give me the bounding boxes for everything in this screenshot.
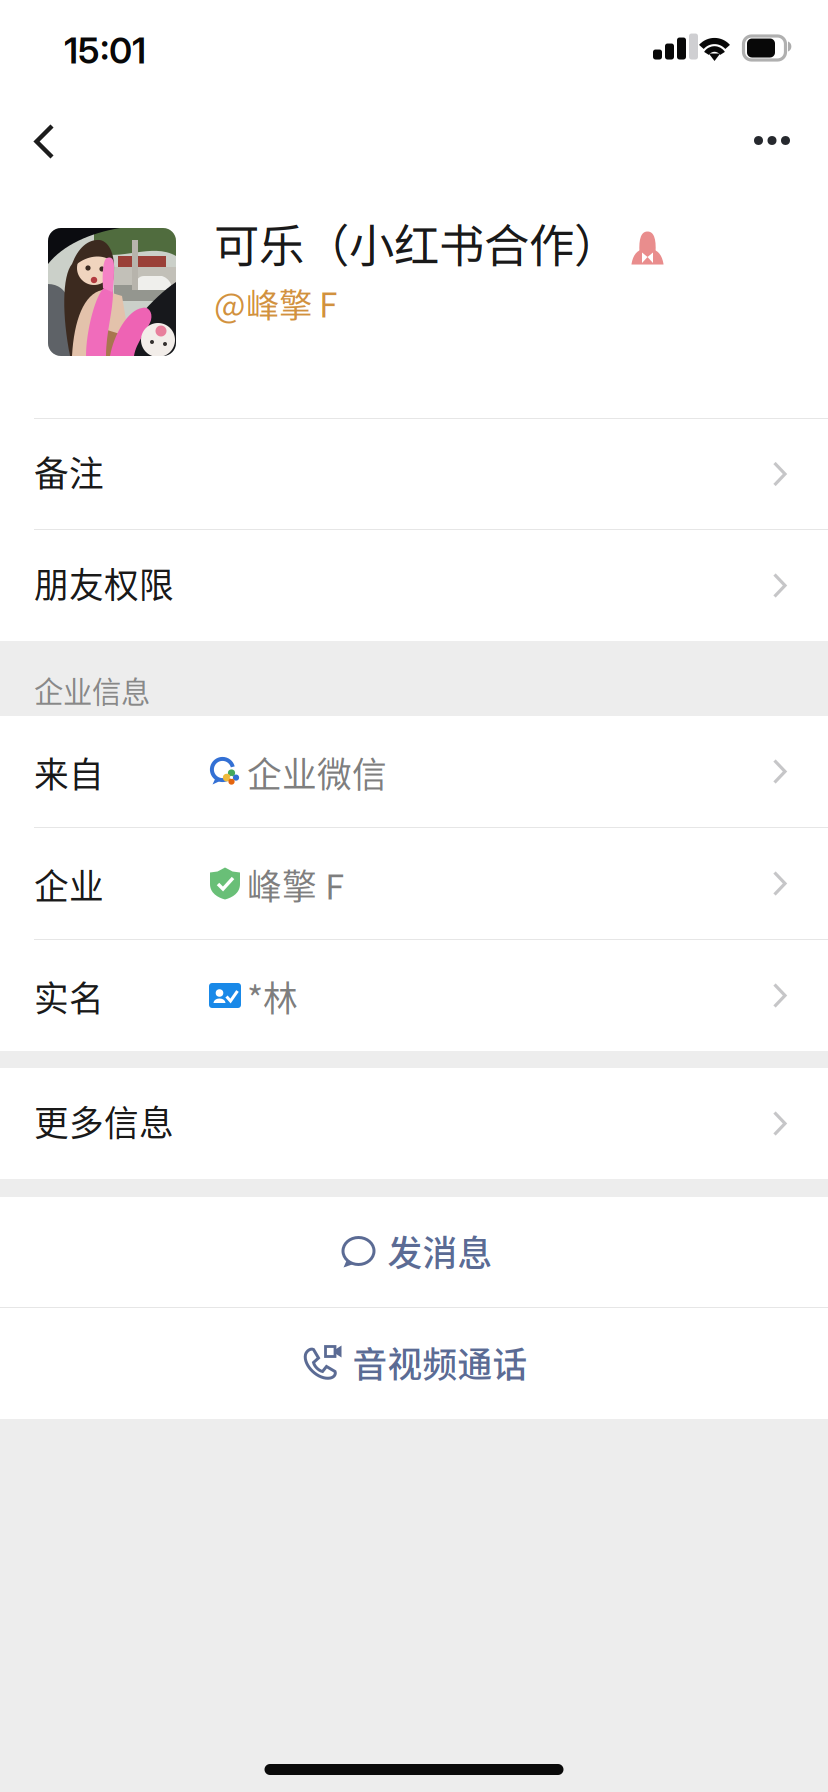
- button[interactable]: Back: [0, 88, 96, 176]
- button[interactable]: More: [716, 88, 828, 176]
- staticText: 音视频通话: [352, 1337, 527, 1388]
- button[interactable]: 朋友权限: [0, 530, 828, 641]
- staticText: 备注: [34, 446, 104, 497]
- staticText: 朋友权限: [34, 558, 174, 608]
- staticText: 15:01: [64, 28, 146, 72]
- staticText: 实名: [34, 971, 104, 1022]
- staticText: *林: [247, 971, 298, 1022]
- staticText: 发消息: [387, 1226, 492, 1276]
- staticText: 来自: [34, 747, 104, 798]
- button[interactable]: 音视频通话: [0, 1308, 828, 1419]
- staticText: 峰擎 F: [247, 859, 344, 910]
- staticText: 可乐（小红书合作）: [214, 210, 619, 276]
- staticText: 更多信息: [34, 1096, 174, 1146]
- button[interactable]: 更多信息: [0, 1068, 828, 1179]
- staticText: 企业: [34, 859, 104, 910]
- staticText: 企业微信: [247, 747, 387, 798]
- button[interactable]: 发消息: [0, 1197, 828, 1307]
- staticText: @峰擎 F: [214, 279, 337, 327]
- button[interactable]: 实名: [0, 940, 828, 1051]
- button[interactable]: 企业: [0, 828, 828, 939]
- button[interactable]: 来自: [0, 716, 828, 827]
- button[interactable]: 备注: [0, 419, 828, 529]
- staticText: 企业信息: [34, 669, 150, 711]
